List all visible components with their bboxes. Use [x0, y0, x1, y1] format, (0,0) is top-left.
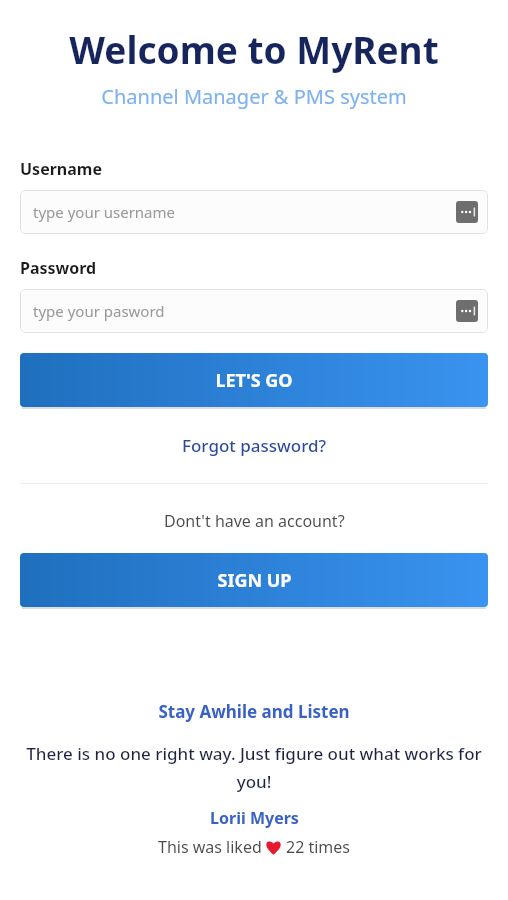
button[interactable]: Username — [20, 190, 488, 234]
staticText: This was liked — [158, 836, 266, 858]
staticText: SIGN UP — [217, 568, 292, 593]
button[interactable]: Lorii Myers — [204, 806, 305, 830]
staticText: There is no one right way. Just figure o… — [20, 742, 488, 793]
staticText: LET'S GO — [215, 368, 293, 393]
staticText: Channel Manager & PMS system — [101, 83, 407, 110]
staticText: type your pasword — [33, 301, 456, 321]
staticText: Dont't have an account? — [164, 510, 345, 532]
button[interactable]: Password — [20, 289, 488, 333]
staticText: Password — [20, 257, 97, 279]
staticText: Forgot password? — [182, 434, 327, 457]
staticText: Username — [20, 158, 102, 180]
button[interactable]: Show input options — [456, 300, 478, 322]
button[interactable]: Show input options — [456, 201, 478, 223]
button[interactable]: SIGN UP — [20, 553, 488, 607]
button[interactable]: LET'S GO — [20, 353, 488, 407]
staticText: type your username — [33, 202, 456, 222]
button[interactable]: Stay Awhile and Listen — [152, 698, 356, 725]
staticText: 22 times — [286, 836, 351, 858]
button[interactable]: Forgot password? — [172, 430, 337, 461]
staticText: Welcome to MyRent — [69, 24, 439, 74]
staticText: Lorii Myers — [210, 807, 299, 829]
staticText: Stay Awhile and Listen — [158, 700, 350, 723]
